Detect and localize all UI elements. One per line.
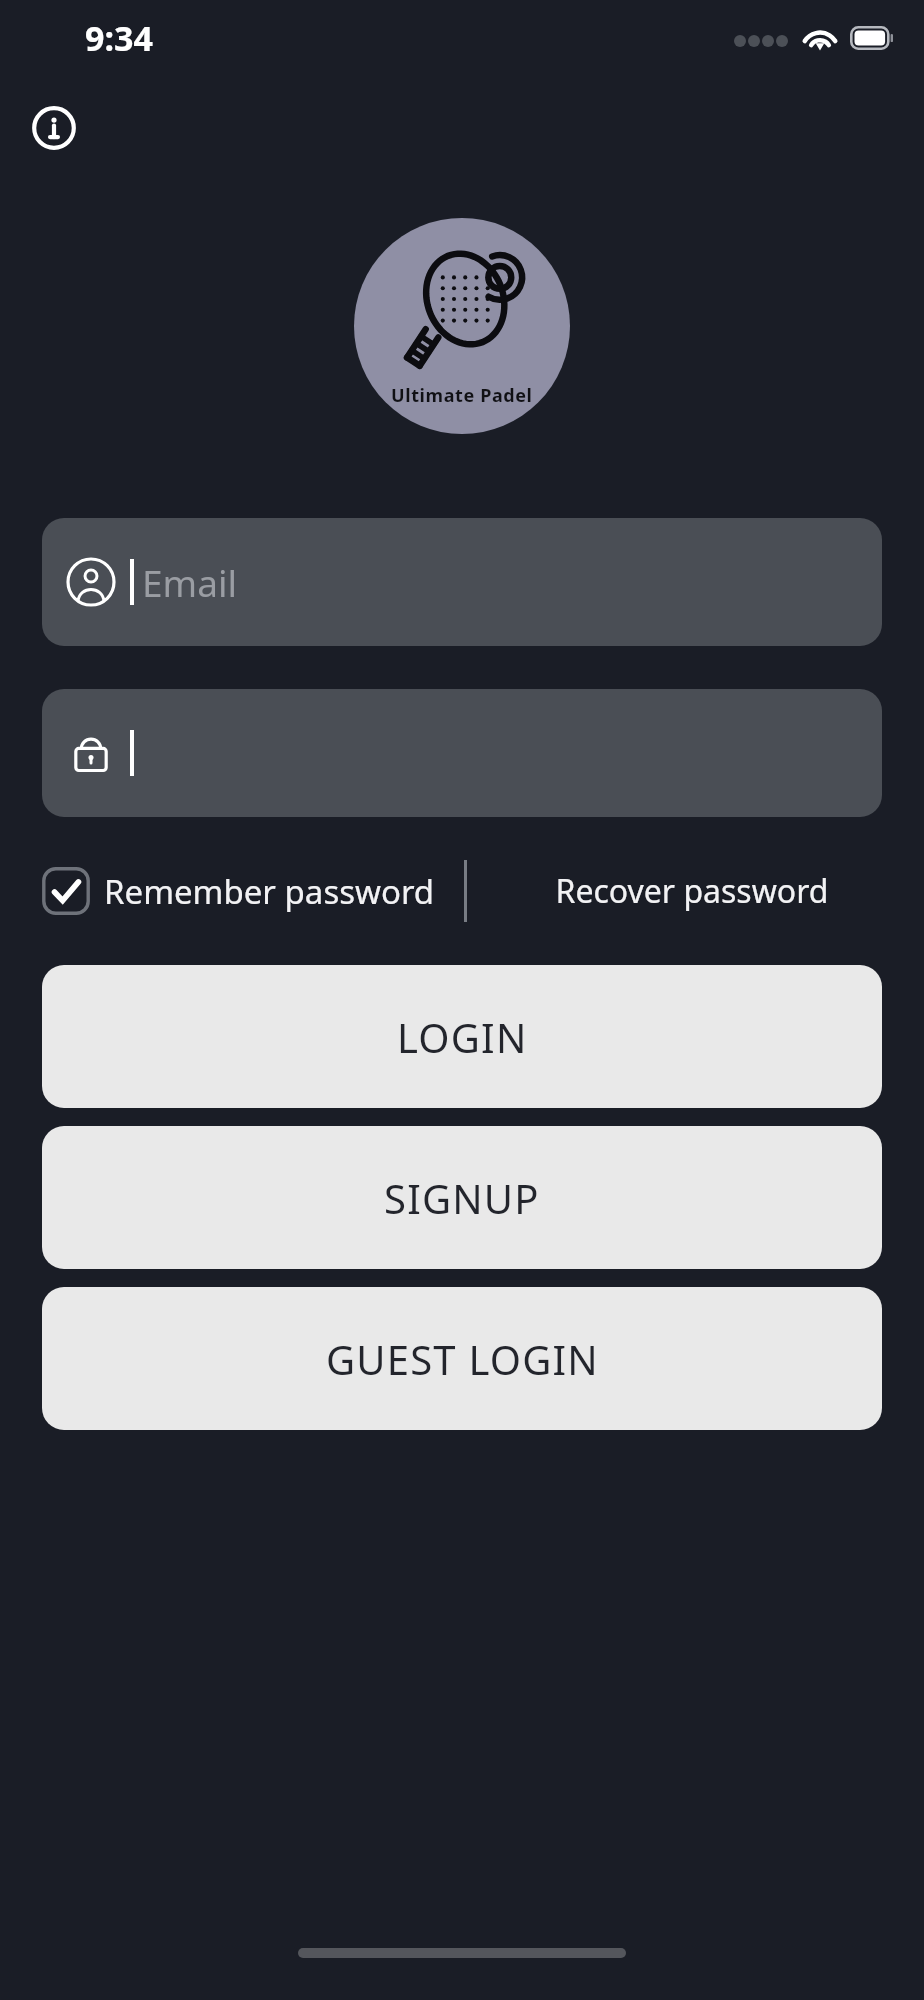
button[interactable]: Email bbox=[42, 518, 882, 646]
staticText: SIGNUP bbox=[384, 1171, 540, 1225]
staticText: 9:34 bbox=[85, 15, 153, 61]
staticText: Email bbox=[142, 557, 238, 607]
staticText: LOGIN bbox=[397, 1010, 528, 1064]
button[interactable]: LOGIN bbox=[42, 965, 882, 1108]
button[interactable] bbox=[42, 689, 882, 817]
staticText: Recover password bbox=[502, 869, 882, 913]
staticText: Ultimate Padel bbox=[391, 383, 533, 408]
button[interactable]: Recover password bbox=[502, 869, 882, 913]
button[interactable]: Remember password bbox=[42, 867, 435, 915]
button[interactable]: Information bbox=[26, 100, 82, 156]
staticText: GUEST LOGIN bbox=[326, 1332, 599, 1386]
button[interactable]: GUEST LOGIN bbox=[42, 1287, 882, 1430]
button[interactable]: SIGNUP bbox=[42, 1126, 882, 1269]
staticText: Remember password bbox=[104, 869, 435, 914]
